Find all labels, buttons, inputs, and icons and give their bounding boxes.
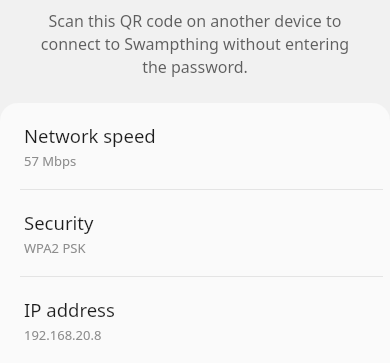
staticText: 57 Mbps xyxy=(24,152,77,170)
staticText: WPA2 PSK xyxy=(24,239,86,257)
button[interactable]: Network speed xyxy=(0,103,390,190)
staticText: IP address xyxy=(24,297,115,322)
staticText: 192.168.20.8 xyxy=(24,326,102,344)
button[interactable]: IP address xyxy=(0,277,390,363)
staticText: Security xyxy=(24,210,94,235)
staticText: Scan this QR code on another device to c… xyxy=(30,10,360,78)
button[interactable]: Security xyxy=(0,190,390,277)
staticText: Network speed xyxy=(24,123,156,148)
